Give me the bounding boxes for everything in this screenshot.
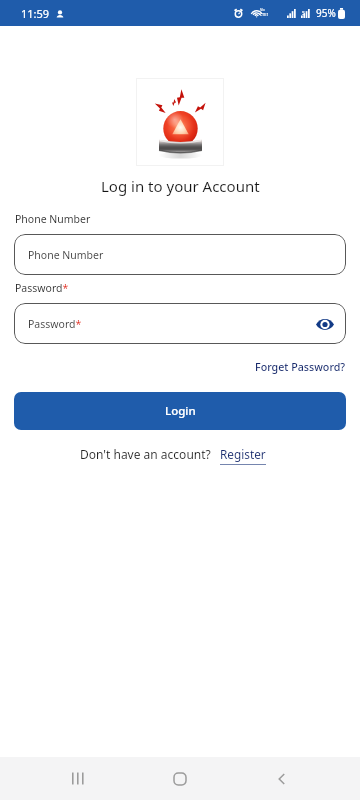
button[interactable]: Register	[220, 446, 266, 465]
staticText: LTE1	[260, 12, 269, 17]
button[interactable]: Show password	[312, 311, 338, 337]
button[interactable]: Forget Password?	[255, 360, 346, 375]
staticText: 95%	[316, 6, 336, 20]
staticText: Login	[165, 403, 196, 419]
staticText: 11:59	[21, 6, 50, 21]
staticText: 5	[302, 10, 305, 17]
staticText: Log in to your Account	[101, 176, 260, 196]
button[interactable]: Recents	[54, 757, 102, 800]
button[interactable]: Password*	[14, 303, 346, 344]
staticText: Phone Number	[28, 248, 104, 262]
staticText: Phone Number	[15, 212, 91, 226]
button[interactable]: Login	[14, 392, 346, 430]
staticText: Register	[220, 446, 266, 462]
staticText: Password*	[15, 281, 69, 295]
staticText: Vo	[260, 7, 265, 12]
button[interactable]: Home	[156, 757, 204, 800]
button[interactable]: Phone Number	[14, 234, 346, 275]
button[interactable]: Back	[258, 757, 306, 800]
staticText: Password*	[28, 317, 82, 331]
staticText: Don't have an account?	[80, 446, 211, 462]
